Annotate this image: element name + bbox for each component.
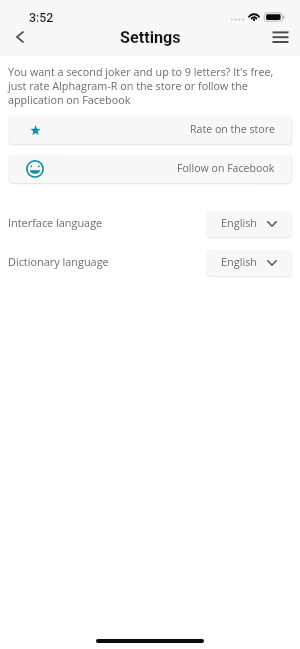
staticText: 3:52 xyxy=(29,12,54,25)
staticText: English xyxy=(221,257,258,269)
button[interactable]: Follow on Facebook xyxy=(9,155,291,183)
button[interactable]: Menu xyxy=(264,25,296,49)
button[interactable]: Back xyxy=(6,26,34,48)
staticText: Settings xyxy=(120,30,181,47)
staticText: Interface language xyxy=(8,218,103,230)
staticText: You want a second joker and up to 9 lett… xyxy=(8,65,284,107)
staticText: Rate on the store xyxy=(190,124,275,136)
staticText: Follow on Facebook xyxy=(177,163,275,175)
button[interactable]: Rate on the store xyxy=(9,116,291,144)
staticText: English xyxy=(221,218,258,230)
button[interactable]: English xyxy=(207,211,291,237)
staticText: Dictionary language xyxy=(8,257,109,269)
button[interactable]: English xyxy=(207,250,291,276)
